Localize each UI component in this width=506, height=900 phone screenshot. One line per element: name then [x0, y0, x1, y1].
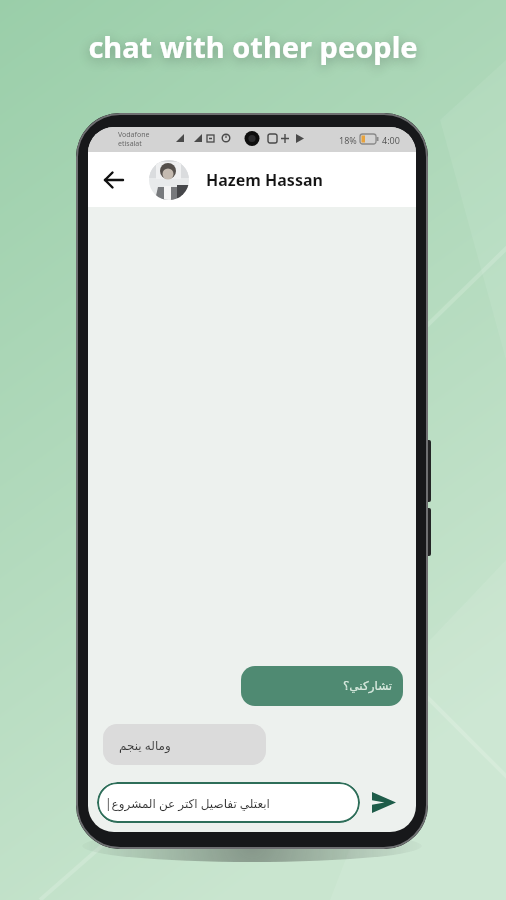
button[interactable]: تشاركني؟	[241, 666, 403, 706]
staticText: etisalat	[118, 139, 142, 149]
staticText: Vodafone	[118, 130, 150, 140]
staticText: chat with other people	[0, 27, 506, 66]
staticText: وماله ينجم	[119, 737, 171, 753]
staticText: تشاركني؟	[343, 679, 393, 693]
button[interactable]: وماله ينجم	[103, 724, 266, 765]
staticText: 18%	[339, 134, 357, 146]
button[interactable]	[366, 782, 402, 822]
button[interactable]	[98, 165, 128, 195]
button[interactable]: Hazem Hassan	[149, 159, 389, 201]
staticText: Hazem Hassan	[206, 169, 323, 191]
button[interactable]: |ابعتلي تفاصيل اكتر عن المشروع	[97, 782, 360, 823]
staticText: 4:00	[382, 134, 400, 146]
staticText: |ابعتلي تفاصيل اكتر عن المشروع	[105, 795, 270, 811]
